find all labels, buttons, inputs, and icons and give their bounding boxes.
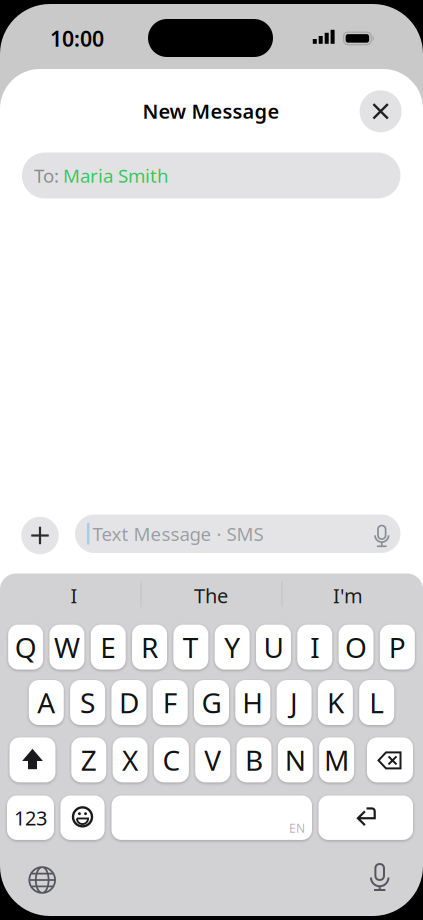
staticText: 10:00 [50,24,104,53]
button[interactable]: Q [8,625,43,670]
button[interactable]: T [173,625,208,670]
button[interactable]: A [29,680,64,725]
staticText: Q [15,628,37,666]
button[interactable]: X [113,737,148,782]
staticText: L [369,684,384,721]
button[interactable]: P [380,625,415,670]
staticText: S [80,684,95,721]
button[interactable]: L [359,680,394,725]
button[interactable]: The [151,580,271,610]
staticText: U [263,628,283,666]
button[interactable]: H [235,680,270,725]
staticText: To: [34,163,59,188]
staticText: 123 [14,804,47,831]
staticText: Text Message · SMS [92,521,263,546]
staticText: EN [289,820,305,836]
staticText: V [204,741,221,778]
button[interactable]: J [277,680,312,725]
staticText: K [327,684,344,721]
staticText: R [141,628,158,666]
button[interactable] [27,865,57,895]
staticText: O [345,628,367,666]
staticText: C [162,741,180,778]
button[interactable]: U [256,625,291,670]
staticText: X [122,741,138,778]
staticText: B [245,741,263,778]
button[interactable]: S [70,680,105,725]
button[interactable]: E [91,625,126,670]
button[interactable]: Y [215,625,250,670]
button[interactable]: O [339,625,374,670]
button[interactable] [367,863,393,893]
staticText: I [310,628,319,666]
button[interactable]: W [49,625,84,670]
button[interactable] [9,737,55,782]
button[interactable]: R [132,625,167,670]
button[interactable]: Text Message · SMS [75,514,400,553]
button[interactable]: N [278,737,313,782]
button[interactable]: K [318,680,353,725]
staticText: The [194,582,228,609]
staticText: Z [81,741,97,778]
button[interactable] [367,737,413,782]
staticText: P [389,628,406,666]
button[interactable]: M [319,737,354,782]
staticText: M [324,741,349,778]
button[interactable] [318,795,413,840]
staticText: N [285,741,306,778]
button[interactable]: 123 [7,795,54,840]
button[interactable]: Z [71,737,106,782]
staticText: T [183,628,199,666]
button[interactable]: To: [22,152,400,198]
staticText: W [54,628,80,666]
staticText: J [290,684,298,721]
staticText: I [70,582,77,609]
staticText: Y [224,628,240,666]
button[interactable]: EN [111,795,312,840]
staticText: G [201,684,221,721]
button[interactable]: G [194,680,229,725]
staticText: D [119,684,139,721]
button[interactable]: C [154,737,189,782]
staticText: I'm [333,582,363,609]
staticText: E [100,628,116,666]
staticText: F [163,684,178,721]
button[interactable]: V [195,737,230,782]
staticText: New Message [142,98,279,124]
button[interactable]: I [297,625,332,670]
staticText: H [242,684,263,721]
staticText: Maria Smith [63,163,169,188]
button[interactable]: I'm [288,580,408,610]
button[interactable]: F [153,680,188,725]
button[interactable]: B [236,737,271,782]
button[interactable] [21,517,59,554]
button[interactable]: D [111,680,146,725]
button[interactable]: I [14,580,134,610]
button[interactable] [60,795,105,840]
button[interactable] [360,90,402,132]
staticText: A [37,684,55,721]
